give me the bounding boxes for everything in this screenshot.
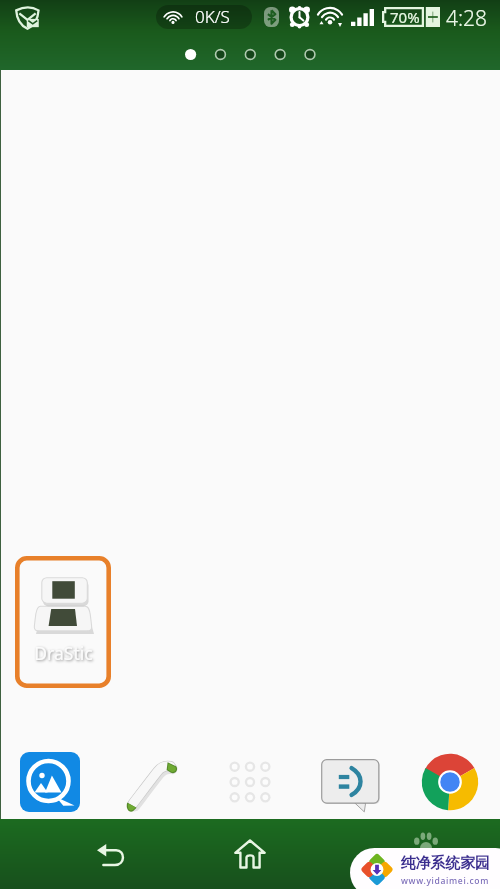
button[interactable]: DraStic xyxy=(15,556,111,688)
staticText: 70% xyxy=(390,7,420,27)
staticText: www.yidaimei.com xyxy=(401,875,489,887)
button[interactable]: Phone xyxy=(100,741,200,823)
button[interactable]: Messaging xyxy=(300,741,400,823)
staticText: 4:28 xyxy=(446,4,488,33)
button[interactable]: Recent apps xyxy=(383,819,469,889)
button[interactable]: Chrome xyxy=(400,741,500,823)
staticText: 纯净系统家园 xyxy=(401,854,490,873)
staticText: 0K/S xyxy=(195,5,230,28)
button[interactable]: Home xyxy=(207,819,293,889)
button[interactable]: Back xyxy=(68,819,154,889)
button[interactable]: QuickPic xyxy=(0,741,100,823)
staticText: DraStic xyxy=(34,641,93,665)
button[interactable]: All apps xyxy=(200,741,300,823)
